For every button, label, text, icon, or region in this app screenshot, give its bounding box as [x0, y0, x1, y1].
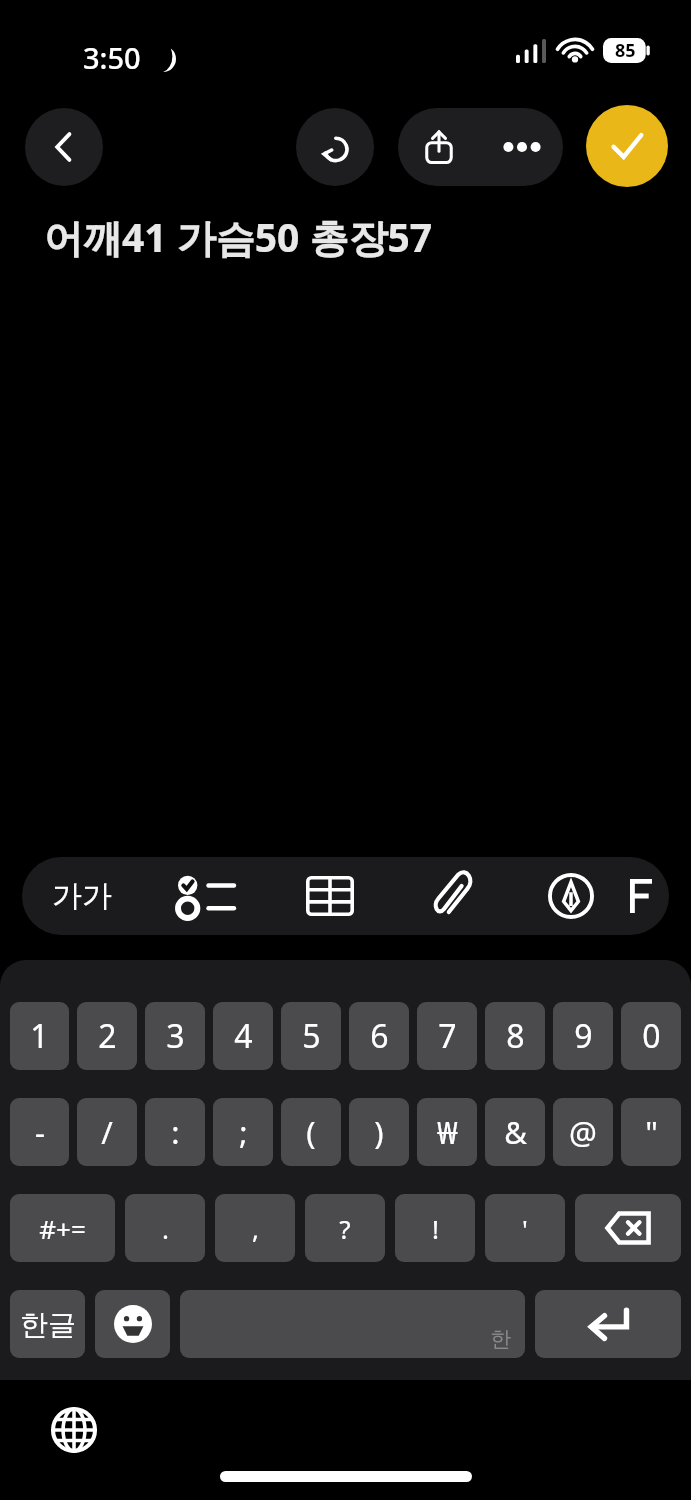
staticText: & [504, 1111, 527, 1153]
staticText: 가가 [52, 877, 112, 915]
button[interactable]: 5 [281, 1002, 341, 1070]
staticText: 5 [302, 1014, 321, 1058]
staticText: ; [239, 1111, 248, 1153]
button[interactable]: ; [213, 1098, 273, 1166]
staticText: 3:50 [83, 38, 141, 77]
staticText: ' [522, 1211, 528, 1246]
button[interactable]: 3 [145, 1002, 205, 1070]
button[interactable]: Share [398, 108, 480, 186]
button[interactable]: 0 [621, 1002, 681, 1070]
button[interactable]: ₩ [417, 1098, 477, 1166]
staticText: 2 [98, 1014, 117, 1058]
staticText: ! [432, 1211, 439, 1246]
button[interactable]: Attach [392, 857, 512, 935]
button[interactable]: Table [267, 857, 392, 935]
button[interactable]: Emoji [95, 1290, 170, 1358]
staticText: 9 [574, 1014, 593, 1058]
button[interactable]: , [215, 1194, 295, 1262]
staticText: 7 [438, 1014, 457, 1058]
staticText: 3 [166, 1014, 185, 1058]
staticText: 1 [30, 1014, 49, 1058]
staticText: 어깨41 가슴50 총장57 [44, 210, 433, 263]
staticText: 6 [370, 1014, 389, 1058]
button[interactable]: Space [180, 1290, 525, 1358]
button[interactable]: 2 [77, 1002, 137, 1070]
button[interactable]: " [621, 1098, 681, 1166]
button[interactable]: ' [485, 1194, 565, 1262]
button[interactable]: 9 [553, 1002, 613, 1070]
staticText: 85 [615, 38, 636, 63]
button[interactable]: 8 [485, 1002, 545, 1070]
staticText: ₩ [437, 1111, 458, 1153]
button[interactable]: & [485, 1098, 545, 1166]
staticText: ? [339, 1211, 351, 1246]
button[interactable]: More [630, 857, 669, 935]
button[interactable]: Undo [296, 108, 374, 186]
staticText: @ [569, 1111, 597, 1153]
button[interactable]: ! [395, 1194, 475, 1262]
button[interactable]: 가가 [22, 857, 142, 935]
staticText: 한 [490, 1326, 511, 1352]
staticText: 0 [642, 1014, 661, 1058]
staticText: " [645, 1111, 658, 1153]
button[interactable]: #+= [10, 1194, 115, 1262]
button[interactable]: Change keyboard language [44, 1400, 104, 1460]
button[interactable]: ? [305, 1194, 385, 1262]
staticText: : [171, 1111, 180, 1153]
button[interactable]: - [10, 1098, 69, 1166]
button[interactable]: Checklist [142, 857, 267, 935]
button[interactable]: ) [349, 1098, 409, 1166]
staticText: 4 [234, 1014, 253, 1058]
button[interactable]: Back [25, 108, 103, 186]
staticText: . [162, 1211, 169, 1246]
button[interactable]: 4 [213, 1002, 273, 1070]
button[interactable]: Return [535, 1290, 681, 1358]
button[interactable]: 6 [349, 1002, 409, 1070]
staticText: 한글 [20, 1307, 76, 1342]
button[interactable]: More options [480, 108, 563, 186]
button[interactable]: . [125, 1194, 205, 1262]
button[interactable]: ( [281, 1098, 341, 1166]
staticText: 8 [506, 1014, 525, 1058]
staticText: , [252, 1211, 259, 1246]
button[interactable]: Backspace [575, 1194, 681, 1262]
staticText: - [35, 1111, 45, 1153]
staticText: ) [374, 1111, 384, 1153]
button[interactable]: @ [553, 1098, 613, 1166]
button[interactable]: / [77, 1098, 137, 1166]
staticText: / [101, 1111, 113, 1153]
button[interactable]: 7 [417, 1002, 477, 1070]
button[interactable]: : [145, 1098, 205, 1166]
button[interactable]: Done [586, 105, 668, 187]
button[interactable]: Markup [512, 857, 630, 935]
button[interactable]: 한글 [10, 1290, 85, 1358]
button[interactable]: 1 [10, 1002, 69, 1070]
staticText: ( [306, 1111, 316, 1153]
staticText: #+= [39, 1211, 86, 1246]
